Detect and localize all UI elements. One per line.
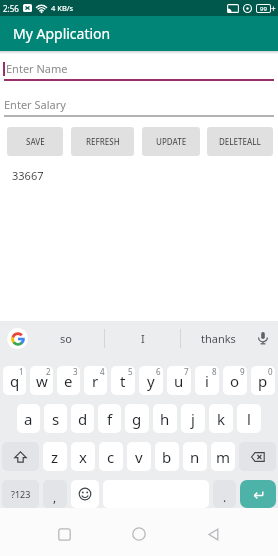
button[interactable]: v bbox=[127, 442, 151, 471]
button[interactable]: REFRESH bbox=[71, 127, 134, 156]
button[interactable]: thanks bbox=[181, 321, 256, 355]
button[interactable]: SAVE bbox=[7, 127, 63, 156]
staticText: . bbox=[223, 489, 227, 505]
staticText: s bbox=[52, 409, 60, 429]
button[interactable]: w bbox=[30, 366, 53, 395]
button[interactable]: I bbox=[105, 321, 180, 355]
button[interactable]: c bbox=[99, 442, 123, 471]
button[interactable]: a bbox=[17, 404, 40, 433]
staticText: 1 bbox=[19, 366, 24, 377]
staticText: w bbox=[36, 371, 48, 391]
button[interactable]: g bbox=[125, 404, 149, 433]
staticText: My Application bbox=[13, 24, 111, 43]
staticText: 4 bbox=[100, 366, 105, 377]
button[interactable]: so bbox=[28, 321, 104, 355]
staticText: k bbox=[217, 409, 226, 429]
staticText: 8 bbox=[212, 366, 217, 377]
button[interactable]: y bbox=[139, 366, 163, 395]
staticText: t bbox=[120, 371, 126, 391]
staticText: z bbox=[51, 447, 59, 467]
staticText: j bbox=[191, 409, 195, 429]
staticText: 99 bbox=[260, 5, 267, 12]
staticText: o bbox=[230, 371, 240, 391]
button[interactable] bbox=[58, 528, 71, 541]
staticText: I bbox=[141, 331, 145, 346]
staticText: UPDATE bbox=[156, 136, 187, 147]
staticText: n bbox=[190, 447, 200, 467]
button[interactable]: o bbox=[223, 366, 247, 395]
button[interactable]: p bbox=[251, 366, 275, 395]
button[interactable]: , bbox=[43, 480, 67, 508]
staticText: SAVE bbox=[26, 136, 45, 147]
button[interactable] bbox=[71, 480, 99, 508]
staticText: p bbox=[258, 371, 268, 391]
staticText: 2:56 bbox=[3, 3, 19, 14]
button[interactable]: e bbox=[57, 366, 80, 395]
staticText: 0 bbox=[268, 366, 273, 377]
button[interactable]: . bbox=[213, 480, 236, 508]
staticText: x bbox=[79, 447, 87, 467]
staticText: 33667 bbox=[12, 168, 44, 183]
staticText: f bbox=[107, 409, 113, 429]
button[interactable]: x bbox=[71, 442, 95, 471]
staticText: Enter Name bbox=[6, 61, 68, 76]
button[interactable] bbox=[2, 442, 39, 471]
button[interactable] bbox=[240, 480, 276, 508]
button[interactable]: k bbox=[209, 404, 233, 433]
button[interactable]: t bbox=[111, 366, 135, 395]
staticText: i bbox=[205, 371, 209, 391]
button[interactable]: DELETEALL bbox=[207, 127, 273, 156]
button[interactable]: q bbox=[3, 366, 26, 395]
button[interactable] bbox=[256, 331, 270, 345]
button[interactable]: l bbox=[237, 404, 261, 433]
staticText: l bbox=[247, 409, 251, 429]
button[interactable]: b bbox=[155, 442, 179, 471]
staticText: g bbox=[132, 409, 142, 429]
staticText: DELETEALL bbox=[219, 136, 261, 147]
button[interactable]: f bbox=[98, 404, 121, 433]
staticText: 9 bbox=[240, 366, 245, 377]
staticText: m bbox=[216, 447, 231, 467]
button[interactable] bbox=[207, 528, 220, 541]
staticText: , bbox=[53, 489, 57, 505]
staticText: e bbox=[64, 371, 73, 391]
staticText: d bbox=[78, 409, 88, 429]
staticText: thanks bbox=[201, 331, 236, 346]
button[interactable] bbox=[7, 328, 28, 349]
button[interactable]: Enter Salary bbox=[0, 97, 278, 112]
staticText: + bbox=[271, 3, 276, 14]
button[interactable] bbox=[239, 442, 276, 471]
button[interactable] bbox=[132, 527, 146, 541]
staticText: y bbox=[147, 371, 155, 391]
button[interactable]: h bbox=[153, 404, 177, 433]
staticText: REFRESH bbox=[86, 136, 120, 147]
button[interactable]: Enter Name bbox=[0, 61, 278, 76]
staticText: 3 bbox=[73, 366, 78, 377]
button[interactable]: z bbox=[43, 442, 67, 471]
button[interactable]: i bbox=[195, 366, 219, 395]
button[interactable]: ?123 bbox=[2, 480, 39, 508]
staticText: q bbox=[10, 371, 20, 391]
button[interactable]: d bbox=[71, 404, 94, 433]
staticText: 5 bbox=[128, 366, 133, 377]
staticText: 2 bbox=[46, 366, 51, 377]
staticText: b bbox=[162, 447, 172, 467]
button[interactable]: UPDATE bbox=[142, 127, 200, 156]
staticText: 4 KB/s bbox=[51, 3, 74, 13]
staticText: 7 bbox=[184, 366, 189, 377]
staticText: ?123 bbox=[11, 488, 31, 500]
button[interactable]: m bbox=[211, 442, 235, 471]
staticText: so bbox=[60, 331, 72, 346]
button[interactable]: u bbox=[167, 366, 191, 395]
staticText: h bbox=[160, 409, 170, 429]
staticText: a bbox=[24, 409, 33, 429]
button[interactable]: r bbox=[84, 366, 107, 395]
button[interactable]: j bbox=[181, 404, 205, 433]
button[interactable]: s bbox=[44, 404, 67, 433]
staticText: v bbox=[135, 447, 143, 467]
staticText: r bbox=[92, 371, 99, 391]
button[interactable]: n bbox=[183, 442, 207, 471]
staticText: c bbox=[107, 447, 115, 467]
staticText: Enter Salary bbox=[4, 97, 66, 112]
